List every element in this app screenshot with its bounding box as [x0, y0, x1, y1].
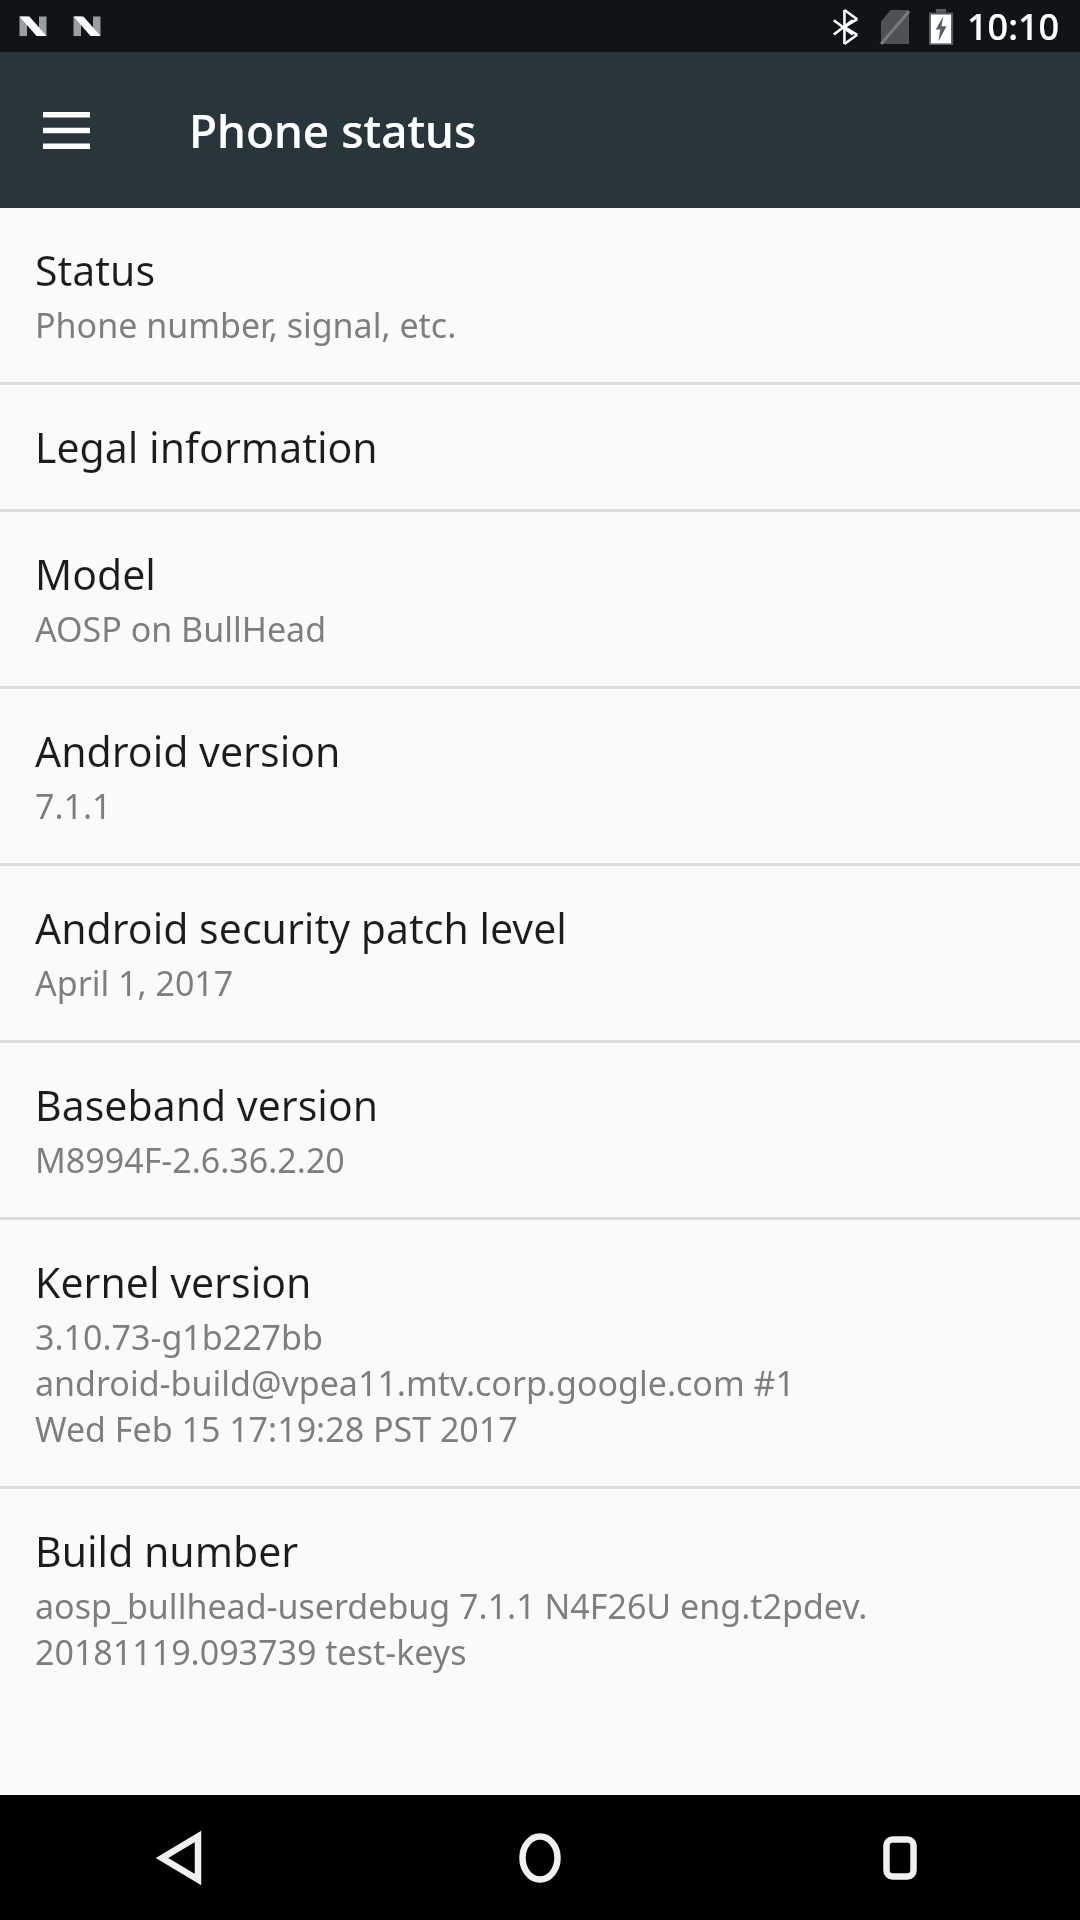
staticText: Model: [35, 546, 156, 602]
button[interactable]: Android security patch level: [0, 866, 1080, 1040]
button[interactable]: Build number: [0, 1489, 1080, 1709]
staticText: M8994F-2.6.36.2.20: [35, 1137, 345, 1183]
staticText: Phone number, signal, etc.: [35, 302, 457, 348]
button[interactable]: Recent apps: [720, 1795, 1080, 1920]
button[interactable]: Status: [0, 208, 1080, 382]
button[interactable]: Legal information: [0, 385, 1080, 509]
staticText: aosp_bullhead-userdebug 7.1.1 N4F26U eng…: [35, 1583, 868, 1629]
button[interactable]: Kernel version: [0, 1220, 1080, 1486]
other: Bluetooth: [833, 10, 859, 44]
staticText: Android security patch level: [35, 900, 567, 956]
staticText: April 1, 2017: [35, 960, 234, 1006]
button[interactable]: Back: [0, 1795, 360, 1920]
staticText: Baseband version: [35, 1077, 379, 1133]
staticText: Legal information: [35, 419, 378, 475]
button[interactable]: Home: [360, 1795, 720, 1920]
other: Battery charging: [929, 9, 953, 45]
button[interactable]: Open navigation menu: [16, 80, 116, 180]
staticText: Kernel version: [35, 1254, 312, 1310]
staticText: Wed Feb 15 17:19:28 PST 2017: [35, 1406, 518, 1452]
staticText: Status: [35, 242, 156, 298]
button[interactable]: Baseband version: [0, 1043, 1080, 1217]
button[interactable]: Model: [0, 512, 1080, 686]
staticText: 7.1.1: [35, 783, 112, 829]
button[interactable]: Android version: [0, 689, 1080, 863]
staticText: AOSP on BullHead: [35, 606, 327, 652]
other: No SIM card: [881, 10, 909, 44]
staticText: 10:10: [967, 2, 1060, 51]
staticText: 20181119.093739 test-keys: [35, 1629, 467, 1675]
staticText: 3.10.73-g1b227bb: [35, 1314, 323, 1360]
staticText: Android version: [35, 723, 341, 779]
staticText: Phone status: [189, 99, 477, 162]
staticText: Build number: [35, 1523, 299, 1579]
staticText: android-build@vpea11.mtv.corp.google.com…: [35, 1360, 795, 1406]
